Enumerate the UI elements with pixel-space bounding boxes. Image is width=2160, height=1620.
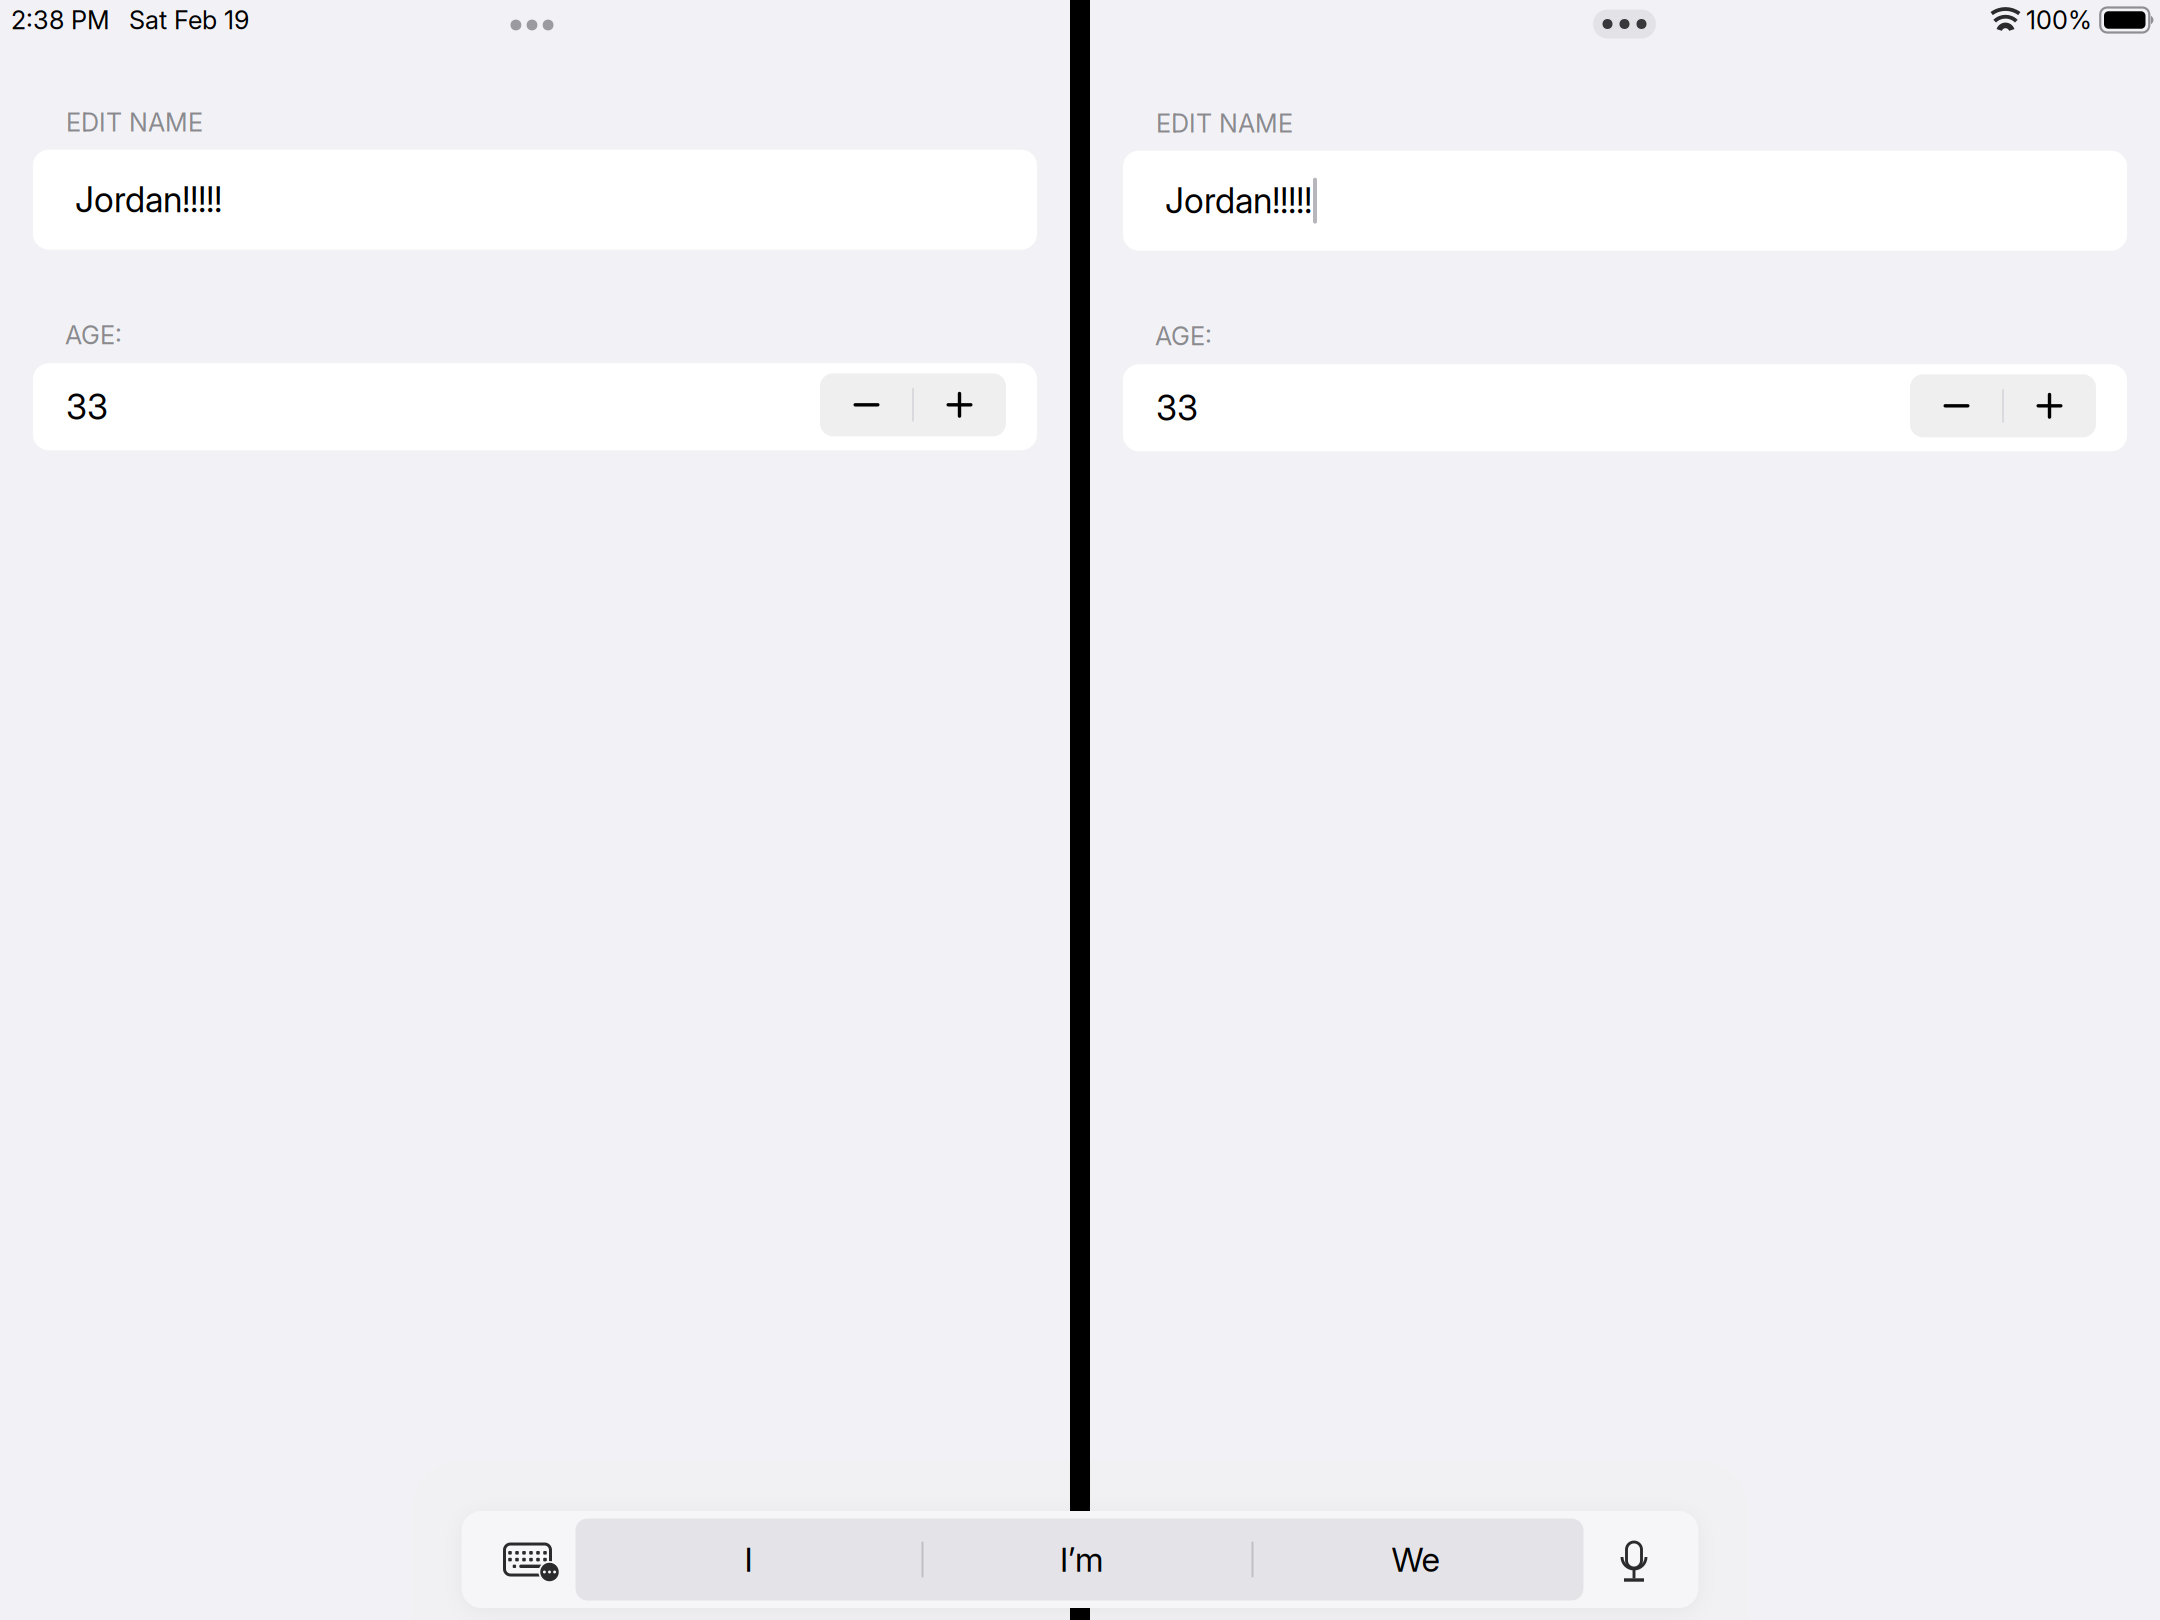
button[interactable]: Jordan!!!!! bbox=[1123, 151, 2127, 251]
button[interactable]: Dictate bbox=[1583, 1511, 1698, 1608]
button[interactable]: We bbox=[1253, 1518, 1583, 1600]
staticText: 33 bbox=[66, 386, 108, 428]
staticText: 100% bbox=[2026, 5, 2092, 35]
button[interactable]: Decrement age bbox=[820, 373, 913, 436]
staticText: Jordan!!!!! bbox=[1165, 180, 1312, 222]
button[interactable]: 33 bbox=[1123, 364, 1910, 451]
staticText: Sat Feb 19 bbox=[129, 5, 249, 35]
staticText: 33 bbox=[1156, 387, 1198, 429]
button[interactable]: Jordan!!!!! bbox=[33, 150, 1037, 250]
staticText: 2:38 PM bbox=[11, 5, 110, 35]
staticText: AGE: bbox=[65, 320, 122, 350]
staticText: AGE: bbox=[1155, 321, 1212, 351]
button[interactable]: Multitasking controls bbox=[501, 0, 563, 40]
staticText: EDIT NAME bbox=[1156, 108, 1293, 139]
button[interactable]: Increment age bbox=[913, 373, 1006, 436]
button[interactable]: 33 bbox=[33, 363, 820, 450]
button[interactable]: I bbox=[575, 1518, 921, 1600]
button[interactable]: Increment age bbox=[2003, 374, 2096, 437]
button[interactable]: I’m bbox=[923, 1518, 1251, 1600]
button[interactable]: Multitasking controls bbox=[1593, 5, 1656, 34]
staticText: EDIT NAME bbox=[66, 107, 203, 138]
button[interactable]: Decrement age bbox=[1910, 374, 2003, 437]
staticText: I bbox=[744, 1539, 752, 1580]
button[interactable]: Keyboard options bbox=[461, 1511, 575, 1608]
staticText: We bbox=[1391, 1539, 1439, 1580]
staticText: Jordan!!!!! bbox=[75, 179, 222, 221]
staticText: I’m bbox=[1060, 1539, 1103, 1580]
